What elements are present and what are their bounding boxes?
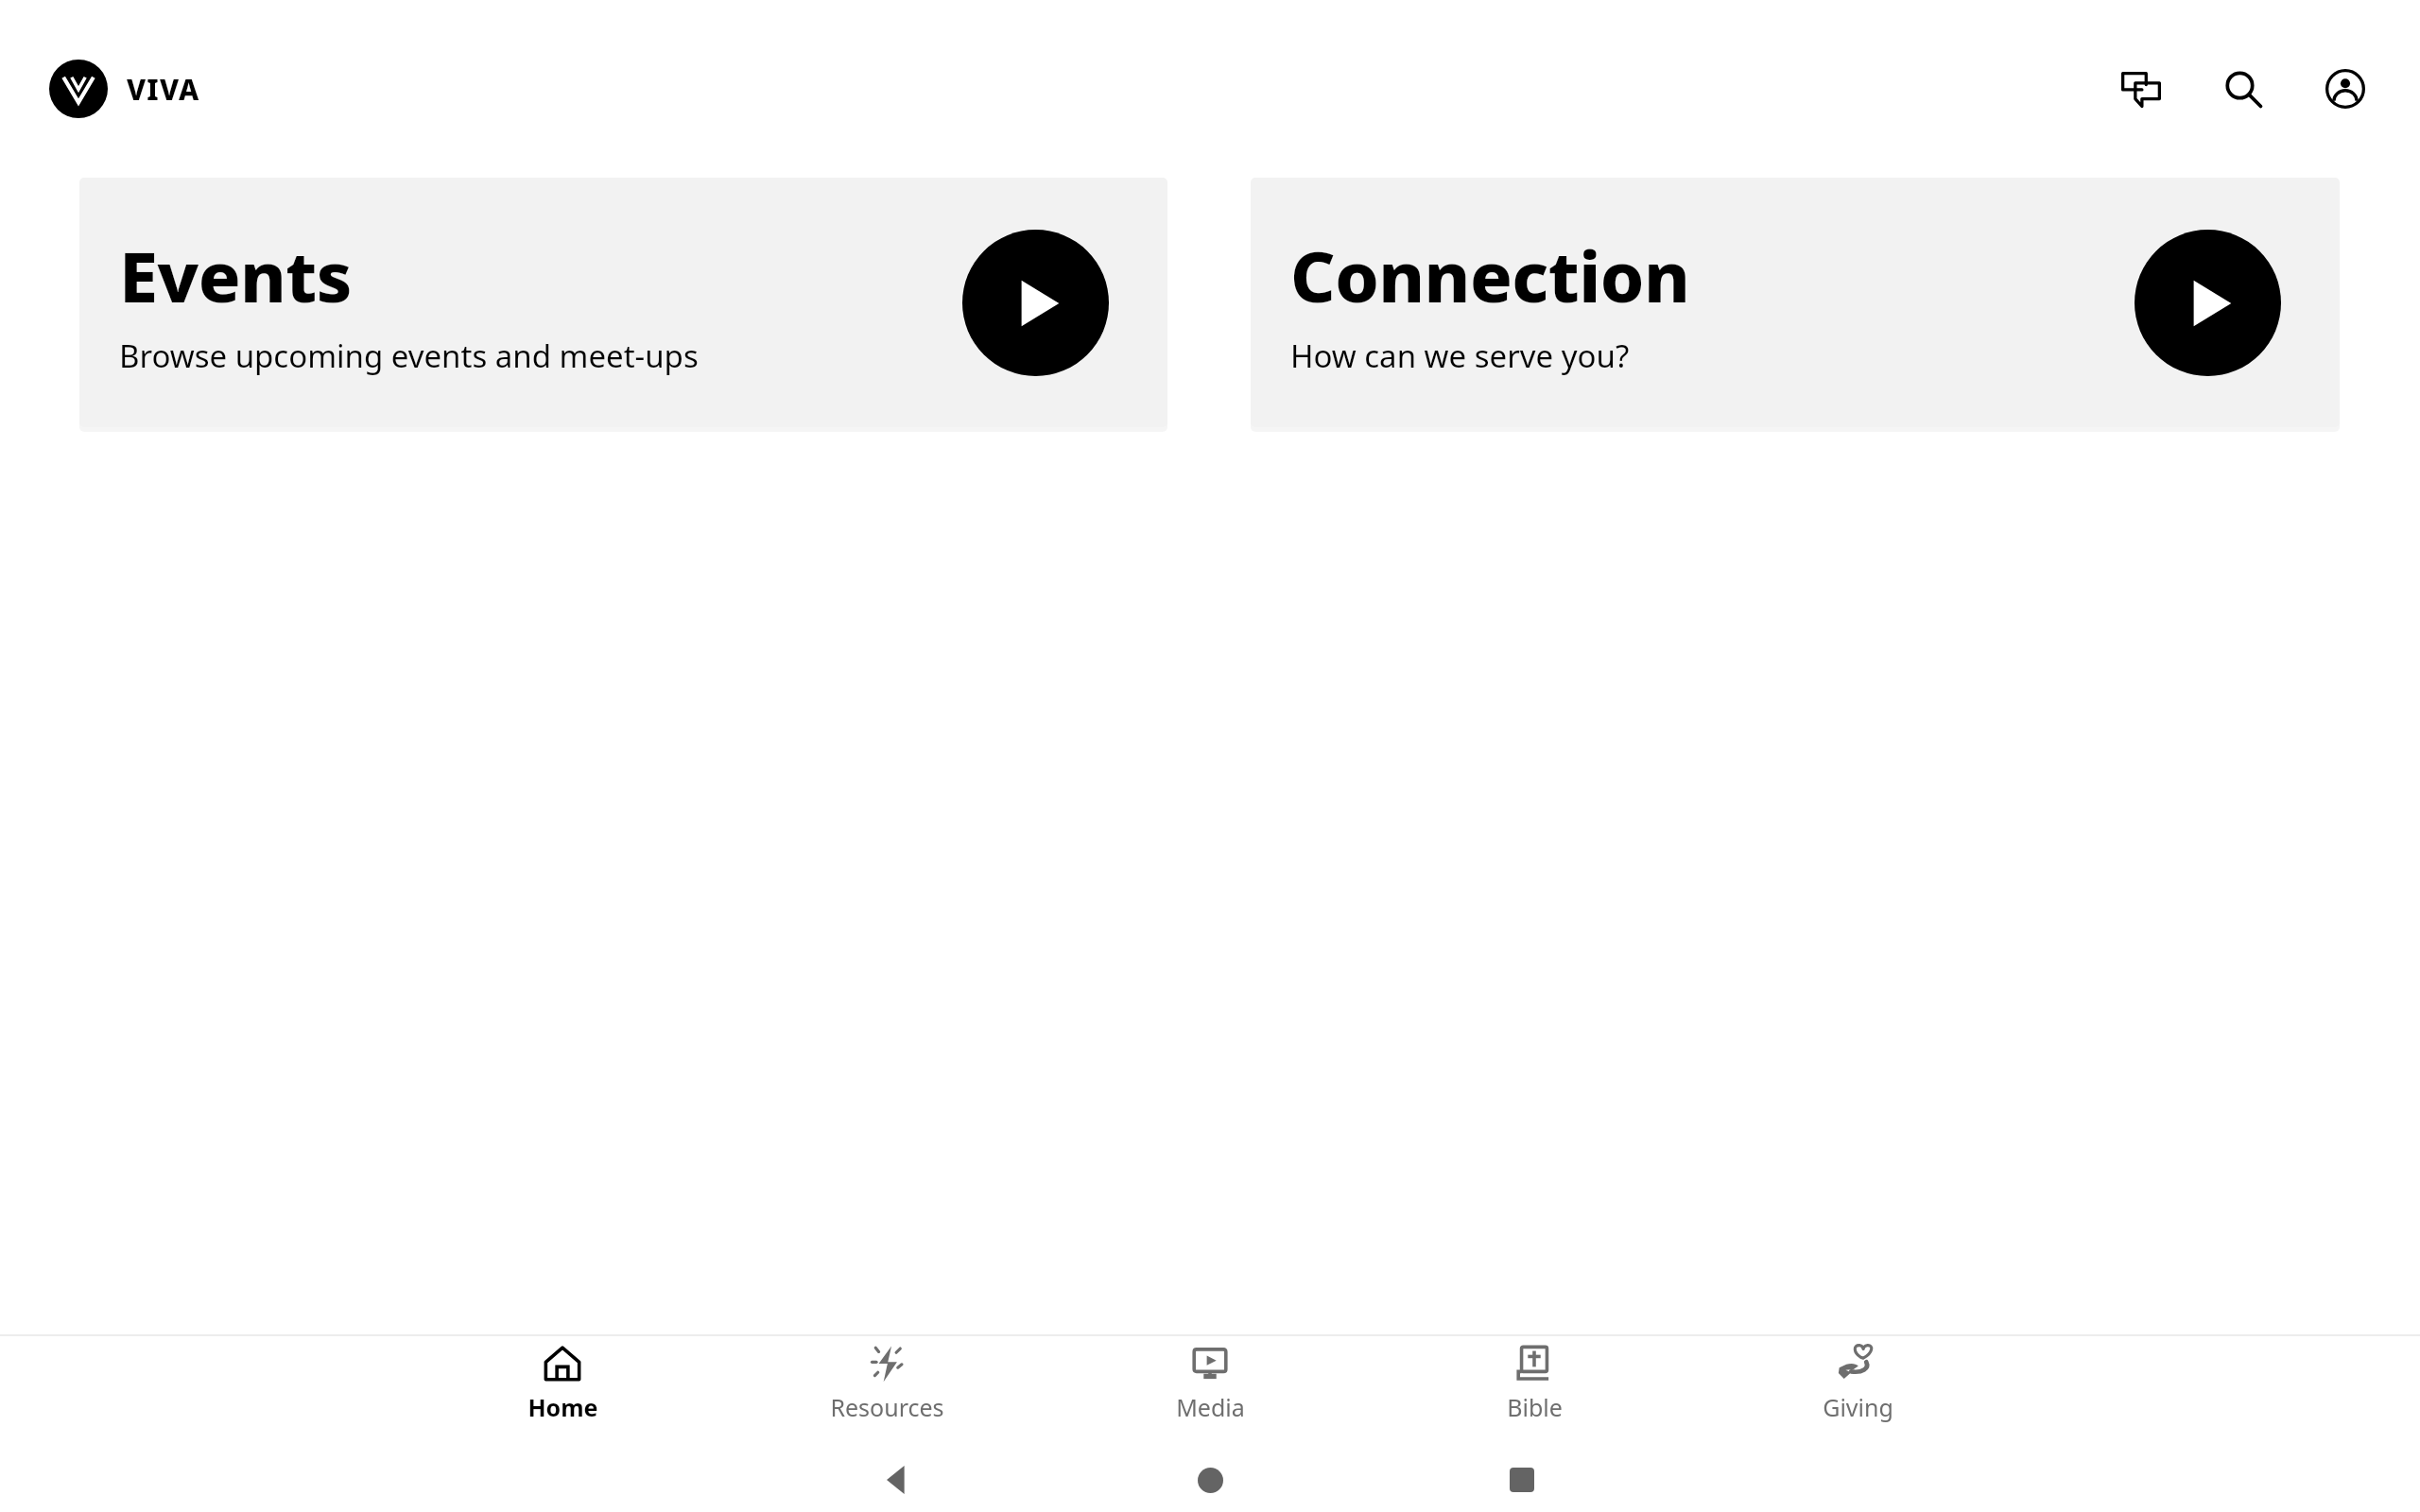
button[interactable]: Home — [1054, 1448, 1366, 1512]
button[interactable]: Search — [2208, 54, 2278, 124]
button[interactable]: Account — [2310, 54, 2380, 124]
button[interactable]: VIVA — [49, 60, 200, 118]
button[interactable]: Media — [1120, 1336, 1300, 1431]
staticText: Resources — [830, 1391, 944, 1423]
staticText: Events — [119, 228, 353, 323]
staticText: Media — [1176, 1391, 1245, 1423]
button[interactable]: Connection — [1251, 178, 2340, 427]
button[interactable]: Back — [742, 1448, 1054, 1512]
button[interactable]: Home — [473, 1336, 652, 1431]
staticText: Browse upcoming events and meet-ups — [119, 335, 699, 377]
button[interactable]: Bible — [1444, 1336, 1624, 1431]
button[interactable]: Recent apps — [1366, 1448, 1678, 1512]
staticText: How can we serve you? — [1290, 335, 1630, 377]
staticText: Giving — [1823, 1391, 1893, 1423]
button[interactable]: Giving — [1768, 1336, 1947, 1431]
button[interactable]: Events — [79, 178, 1167, 427]
staticText: VIVA — [127, 70, 200, 109]
button[interactable]: Open Events — [962, 230, 1109, 376]
button[interactable]: Open Connection — [2135, 230, 2281, 376]
staticText: Bible — [1507, 1391, 1563, 1423]
staticText: Home — [527, 1391, 598, 1423]
button[interactable]: Messages — [2106, 54, 2176, 124]
staticText: Connection — [1290, 228, 1690, 323]
button[interactable]: Resources — [797, 1336, 977, 1431]
